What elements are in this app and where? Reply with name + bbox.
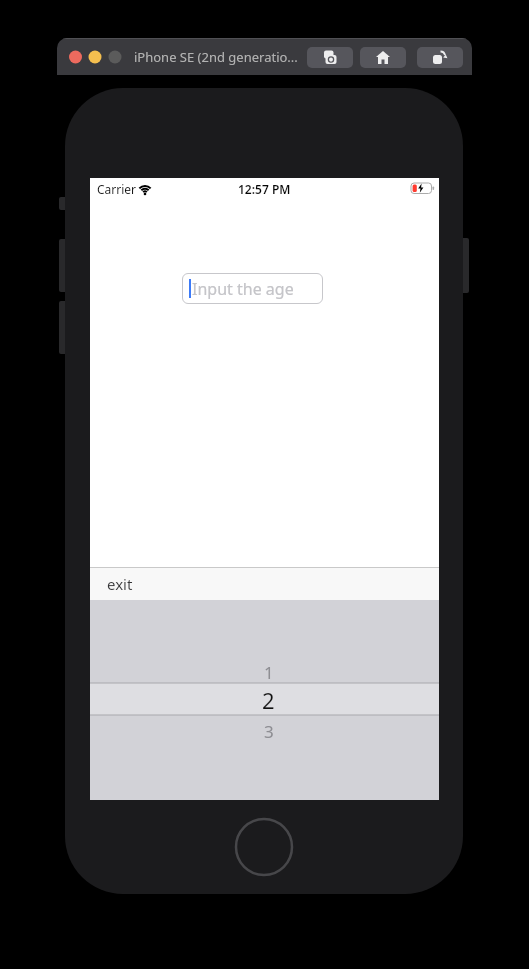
button[interactable]: 1: [90, 600, 439, 800]
button[interactable]: exit: [94, 567, 144, 600]
staticText: 1: [264, 661, 274, 684]
staticText: Carrier: [97, 181, 137, 197]
staticText: 12:57 PM: [238, 181, 291, 197]
button[interactable]: [307, 47, 353, 68]
staticText: exit: [107, 574, 133, 594]
staticText: iPhone SE (2nd generatio...: [134, 48, 298, 66]
button[interactable]: [360, 47, 406, 68]
button[interactable]: [417, 47, 463, 68]
staticText: 3: [264, 720, 274, 743]
staticText: 2: [262, 685, 275, 715]
staticText: Input the age: [192, 278, 294, 300]
button[interactable]: Input the age: [182, 273, 323, 304]
